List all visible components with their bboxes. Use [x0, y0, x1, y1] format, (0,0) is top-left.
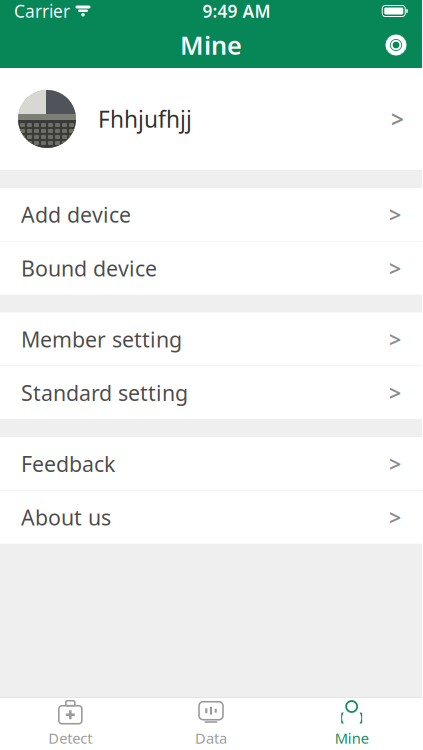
staticText: Member setting	[21, 325, 182, 353]
button[interactable]: Standard setting	[0, 366, 422, 419]
staticText: 9:49 AM	[202, 0, 270, 22]
button[interactable]: About us	[0, 491, 422, 544]
button[interactable]: Fhhjufhjj	[0, 68, 422, 170]
staticText: >	[389, 503, 401, 531]
button[interactable]: Bound device	[0, 242, 422, 295]
staticText: >	[389, 378, 401, 407]
staticText: Bound device	[21, 254, 157, 282]
staticText: Fhhjufhjj	[98, 104, 192, 134]
staticText: About us	[21, 503, 111, 531]
staticText: >	[391, 104, 404, 134]
staticText: Detect	[48, 728, 92, 748]
button[interactable]: Data	[141, 698, 281, 750]
staticText: Mine	[180, 28, 242, 62]
staticText: >	[389, 200, 401, 229]
staticText: Mine	[335, 728, 369, 748]
button[interactable]: Detect	[0, 698, 141, 750]
staticText: Carrier	[14, 0, 70, 22]
staticText: Data	[195, 728, 227, 748]
staticText: >	[389, 449, 401, 478]
button[interactable]: Settings	[370, 23, 422, 67]
staticText: Feedback	[21, 449, 115, 478]
button[interactable]: Mine	[281, 698, 422, 750]
staticText: Add device	[21, 200, 131, 229]
staticText: >	[389, 254, 401, 282]
button[interactable]: Feedback	[0, 437, 422, 491]
button[interactable]: Member setting	[0, 313, 422, 366]
button[interactable]: Add device	[0, 188, 422, 242]
staticText: Standard setting	[21, 378, 188, 407]
staticText: >	[389, 325, 401, 353]
